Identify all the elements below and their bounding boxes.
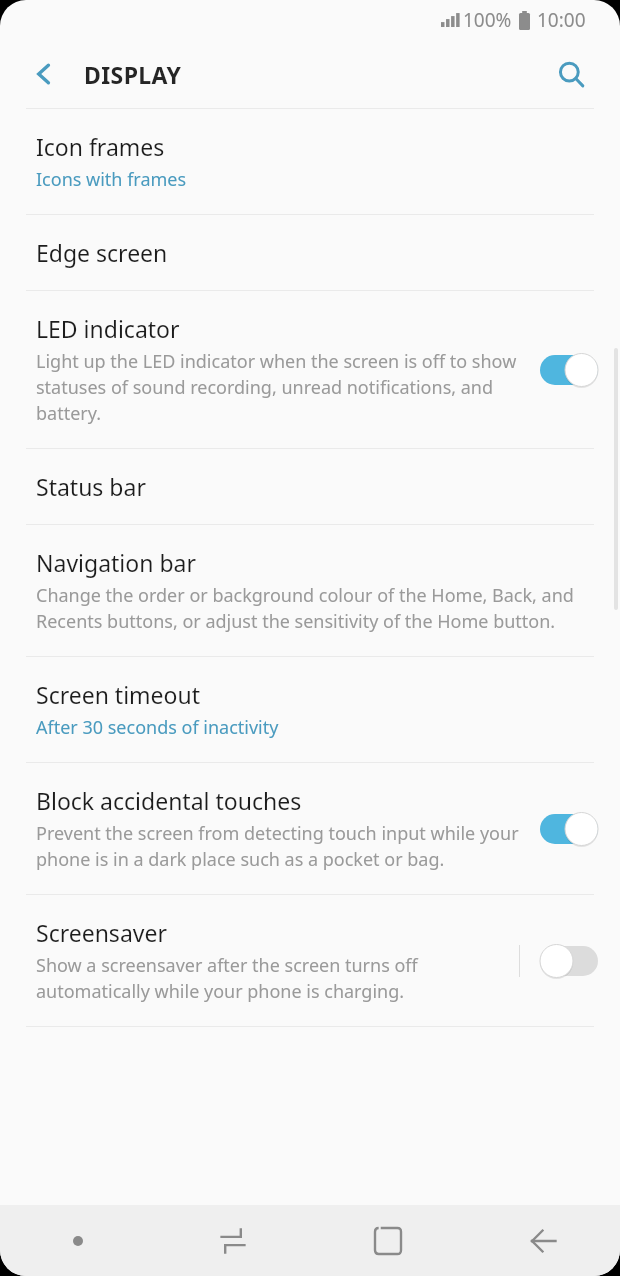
button[interactable]: Icon frames <box>0 109 620 214</box>
button[interactable]: LED indicator <box>0 291 620 448</box>
staticText: Icon frames <box>36 131 165 162</box>
button[interactable]: Recents <box>155 1205 310 1276</box>
button[interactable]: Block accidental touches <box>0 763 620 894</box>
staticText: DISPLAY <box>84 59 182 90</box>
button[interactable]: Screen timeout <box>0 657 620 762</box>
button[interactable]: Search <box>545 48 597 100</box>
staticText: 10:00 <box>537 7 586 33</box>
button[interactable]: Navigation bar <box>0 525 620 656</box>
button[interactable]: Screensaver <box>0 895 620 1026</box>
staticText: Navigation bar <box>36 547 196 578</box>
button[interactable]: Back <box>18 48 70 100</box>
staticText: Screen timeout <box>36 679 200 710</box>
staticText: After 30 seconds of inactivity <box>36 715 279 740</box>
staticText: Edge screen <box>36 237 168 268</box>
staticText: Status bar <box>36 471 146 502</box>
staticText: LED indicator <box>36 313 180 344</box>
staticText: Change the order or background colour of… <box>36 583 586 634</box>
staticText: Icons with frames <box>36 167 187 192</box>
button[interactable]: Edge screen <box>0 215 620 290</box>
staticText: Light up the LED indicator when the scre… <box>36 349 528 426</box>
staticText: Show a screensaver after the screen turn… <box>36 953 507 1004</box>
staticText: Screensaver <box>36 917 167 948</box>
button[interactable]: Switch on <box>540 812 598 846</box>
staticText: 100% <box>463 7 512 33</box>
button[interactable]: Switch off <box>540 944 598 978</box>
staticText: Prevent the screen from detecting touch … <box>36 821 528 872</box>
button[interactable]: Home <box>310 1205 465 1276</box>
button[interactable]: Status bar <box>0 449 620 524</box>
button[interactable]: Back <box>465 1205 620 1276</box>
button[interactable]: Hide keyboard <box>0 1205 155 1276</box>
button[interactable]: Switch on <box>540 353 598 387</box>
staticText: Block accidental touches <box>36 785 302 816</box>
